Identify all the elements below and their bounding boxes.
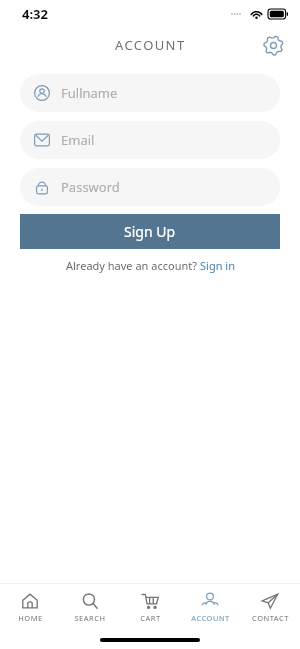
button[interactable]: HOME <box>0 592 60 623</box>
button[interactable]: Email <box>20 121 280 159</box>
button[interactable]: Sign in <box>200 258 235 273</box>
staticText: Already have an account? <box>66 258 200 273</box>
staticText: CART <box>140 613 161 623</box>
staticText: Sign Up <box>124 222 176 241</box>
staticText: Email <box>61 131 95 149</box>
staticText: ACCOUNT <box>115 36 186 54</box>
button[interactable]: Sign Up <box>20 214 280 249</box>
button[interactable]: CONTACT <box>240 592 300 623</box>
staticText: 4:32 <box>22 5 48 23</box>
button[interactable]: Password <box>20 168 280 206</box>
button[interactable]: Settings <box>256 28 290 62</box>
button[interactable]: CART <box>120 592 180 623</box>
staticText: ACCOUNT <box>191 613 230 623</box>
staticText: HOME <box>18 613 43 623</box>
button[interactable]: SEARCH <box>60 592 120 623</box>
button[interactable]: ACCOUNT <box>180 592 240 623</box>
staticText: SEARCH <box>74 613 106 623</box>
button[interactable]: Fullname <box>20 74 280 112</box>
staticText: CONTACT <box>252 613 289 623</box>
staticText: Password <box>61 178 120 196</box>
staticText: Sign in <box>200 258 235 273</box>
staticText: Fullname <box>61 84 118 102</box>
